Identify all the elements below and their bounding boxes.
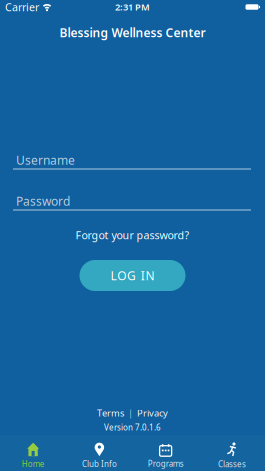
staticText: Carrier: [5, 0, 39, 14]
button[interactable]: Programs: [132, 435, 199, 471]
button[interactable]: Classes: [199, 435, 265, 471]
staticText: Version 7.0.1.6: [104, 422, 161, 433]
staticText: Blessing Wellness Center: [59, 24, 205, 40]
staticText: |: [128, 407, 133, 419]
button[interactable]: LOG IN: [79, 260, 185, 291]
staticText: Programs: [148, 458, 184, 469]
button[interactable]: Privacy: [137, 407, 168, 419]
button[interactable]: Club Info: [66, 435, 132, 471]
staticText: Club Info: [82, 459, 117, 469]
staticText: Terms: [97, 407, 124, 419]
staticText: 2:31 PM: [115, 1, 150, 13]
button[interactable]: Home: [0, 435, 66, 471]
button[interactable]: Terms: [97, 407, 124, 419]
button[interactable]: Username text field: [0, 153, 265, 169]
staticText: LOG IN: [110, 267, 154, 283]
button[interactable]: Password text field: [0, 194, 265, 210]
staticText: Forgot your password?: [75, 228, 189, 242]
staticText: Username: [16, 152, 75, 168]
button[interactable]: Forgot your password?: [75, 228, 189, 241]
staticText: Home: [22, 459, 45, 469]
staticText: Password: [16, 193, 70, 209]
staticText: Classes: [218, 459, 246, 469]
staticText: Privacy: [137, 407, 168, 419]
